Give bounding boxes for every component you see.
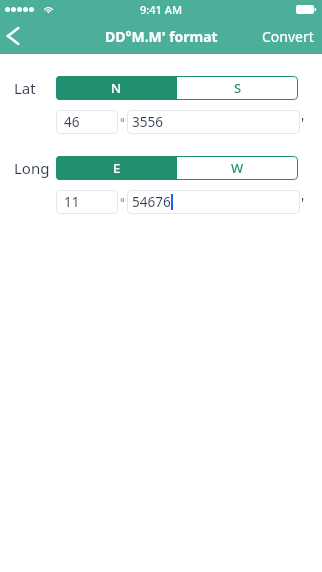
staticText: Lat <box>14 78 36 98</box>
staticText: Convert <box>262 27 314 46</box>
staticText: 9:41 AM <box>140 2 183 17</box>
staticText: ° <box>120 114 125 129</box>
staticText: Long <box>14 158 50 178</box>
button[interactable]: N <box>56 76 177 100</box>
button[interactable]: Back <box>0 18 25 54</box>
button[interactable]: 46 <box>56 110 118 134</box>
staticText: W <box>231 159 244 177</box>
button[interactable]: W <box>177 156 298 180</box>
staticText: S <box>234 79 242 97</box>
staticText: N <box>111 79 122 97</box>
button[interactable]: 54676 <box>127 190 300 214</box>
button[interactable]: 3556 <box>127 110 300 134</box>
staticText: 54676 <box>132 193 171 211</box>
button[interactable]: 11 <box>56 190 118 214</box>
staticText: ' <box>301 193 305 212</box>
staticText: 11 <box>64 193 80 211</box>
button[interactable]: S <box>177 76 298 100</box>
staticText: 46 <box>64 113 80 131</box>
button[interactable]: E <box>56 156 177 180</box>
staticText: ' <box>301 113 305 132</box>
staticText: E <box>113 159 121 177</box>
staticText: DD°M.M' format <box>105 27 218 46</box>
staticText: 3556 <box>132 113 163 131</box>
button[interactable]: Convert <box>254 27 322 46</box>
staticText: ° <box>120 194 125 209</box>
